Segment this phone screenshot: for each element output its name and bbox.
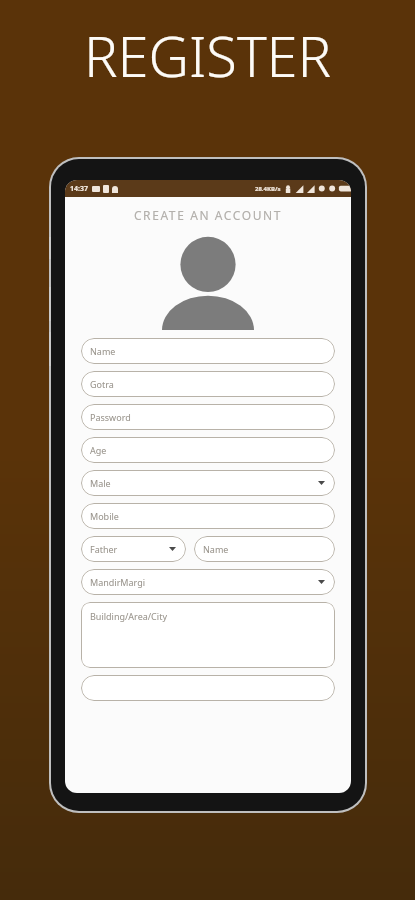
button[interactable] [81,675,335,701]
staticText: 28.4KB/s [255,185,281,193]
button[interactable]: Father [81,536,186,562]
staticText: REGISTER [0,17,415,93]
staticText: Male [90,477,111,489]
staticText: Password [90,411,131,423]
staticText: Building/Area/City [90,610,167,622]
button[interactable]: Name [81,338,335,364]
button[interactable]: Building/Area/City [81,602,335,668]
button[interactable]: Password [81,404,335,430]
button[interactable]: MandirMargi [81,569,335,595]
staticText: Name [90,345,116,357]
staticText: CREATE AN ACCOUNT [65,207,351,223]
staticText: Age [90,444,107,456]
button[interactable]: Mobile [81,503,335,529]
button[interactable]: Profile photo [162,235,254,330]
button[interactable]: Male [81,470,335,496]
button[interactable]: Age [81,437,335,463]
staticText: 14:37 [70,184,88,194]
staticText: Gotra [90,378,114,390]
staticText: Father [90,543,118,555]
button[interactable]: Gotra [81,371,335,397]
button[interactable]: Name [194,536,335,562]
staticText: Mobile [90,510,119,522]
staticText: Name [203,543,229,555]
staticText: MandirMargi [90,576,146,588]
